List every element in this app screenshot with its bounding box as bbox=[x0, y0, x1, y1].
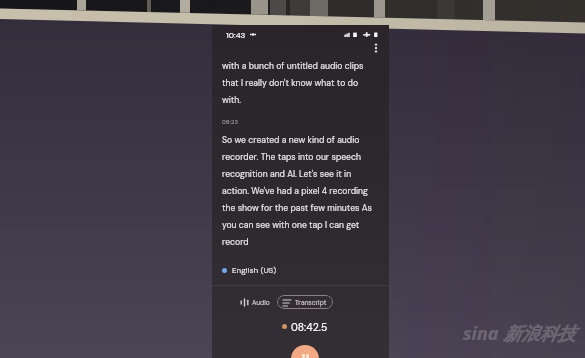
staticText: sina 新浪科技 bbox=[463, 321, 576, 346]
staticText: 10:43 bbox=[226, 30, 246, 40]
button[interactable]: English (US) bbox=[220, 264, 279, 276]
staticText: 08:42.5 bbox=[291, 321, 328, 335]
button[interactable]: Audio bbox=[237, 295, 273, 310]
button[interactable]: Pause recording bbox=[291, 345, 319, 358]
staticText: 08:23 bbox=[222, 118, 239, 125]
button[interactable]: Transcript bbox=[277, 295, 333, 309]
staticText: English (US) bbox=[232, 265, 277, 275]
staticText: Transcript bbox=[295, 298, 327, 307]
button[interactable]: More options bbox=[368, 40, 384, 56]
staticText: with a bunch of untitled audio clips tha… bbox=[222, 60, 364, 106]
staticText: Audio bbox=[252, 298, 270, 307]
staticText: So we created a new kind of audio record… bbox=[222, 134, 372, 248]
